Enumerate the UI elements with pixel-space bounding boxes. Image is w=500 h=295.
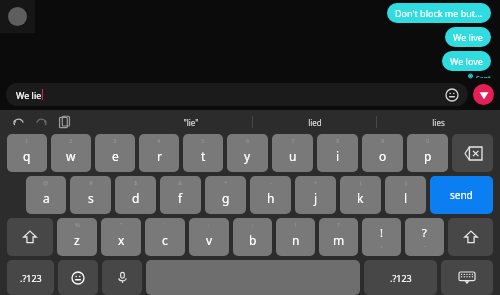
staticText: m bbox=[333, 232, 345, 248]
staticText: ! bbox=[380, 225, 383, 240]
staticText: .?123 bbox=[20, 272, 42, 284]
button[interactable]: 7 bbox=[272, 134, 313, 172]
button[interactable]: ! bbox=[362, 218, 401, 256]
button[interactable]: Voice input bbox=[102, 260, 142, 295]
staticText: ! bbox=[295, 221, 297, 229]
staticText: f bbox=[178, 190, 183, 206]
button[interactable]: ? bbox=[319, 218, 358, 256]
button[interactable]: Space bbox=[146, 260, 360, 295]
staticText: r bbox=[157, 148, 162, 164]
staticText: " bbox=[120, 221, 123, 229]
staticText: * bbox=[224, 179, 228, 187]
button[interactable]: Shift bbox=[448, 218, 493, 256]
button[interactable]: Undo bbox=[10, 114, 26, 130]
staticText: lied bbox=[308, 117, 322, 128]
button[interactable]: Don't block me but… bbox=[387, 3, 491, 23]
staticText: We love bbox=[450, 55, 483, 67]
staticText: Don't block me but… bbox=[395, 7, 483, 19]
button[interactable]: 2 bbox=[51, 134, 91, 172]
staticText: s bbox=[88, 190, 94, 206]
button[interactable]: 9 bbox=[362, 134, 403, 172]
button[interactable]: : bbox=[189, 218, 229, 256]
button[interactable]: @ bbox=[26, 176, 66, 214]
button[interactable]: .?123 bbox=[364, 260, 437, 295]
button[interactable]: Backspace bbox=[452, 134, 493, 172]
staticText: & bbox=[178, 179, 183, 187]
staticText: 2 bbox=[69, 137, 73, 145]
button[interactable]: Hide keyboard bbox=[441, 260, 493, 295]
button[interactable]: * bbox=[205, 176, 246, 214]
button[interactable]: + bbox=[295, 176, 336, 214]
button[interactable]: ? bbox=[405, 218, 444, 256]
staticText: z bbox=[74, 232, 80, 248]
staticText: send bbox=[450, 188, 473, 202]
button[interactable]: - bbox=[250, 176, 291, 214]
button[interactable]: Emoji bbox=[58, 260, 98, 295]
staticText: k bbox=[357, 190, 364, 206]
button[interactable]: 0 bbox=[407, 134, 448, 172]
button[interactable]: 8 bbox=[317, 134, 358, 172]
staticText: 8 bbox=[336, 137, 340, 145]
staticText: ) bbox=[405, 179, 407, 187]
button[interactable]: " bbox=[101, 218, 141, 256]
button[interactable]: 3 bbox=[95, 134, 135, 172]
staticText: g bbox=[222, 190, 230, 206]
button[interactable]: lied bbox=[253, 110, 376, 134]
button[interactable]: 4 bbox=[139, 134, 179, 172]
button[interactable]: ' bbox=[145, 218, 185, 256]
staticText: . bbox=[424, 240, 426, 250]
staticText: lies bbox=[432, 117, 445, 128]
button[interactable]: 6 bbox=[227, 134, 268, 172]
button[interactable]: lies bbox=[377, 110, 500, 134]
staticText: - bbox=[270, 179, 272, 187]
staticText: 0 bbox=[426, 137, 430, 145]
staticText: u bbox=[289, 148, 297, 164]
button[interactable]: .?123 bbox=[7, 260, 54, 295]
staticText: h bbox=[267, 190, 275, 206]
staticText: e bbox=[112, 148, 119, 164]
staticText: v bbox=[206, 232, 213, 248]
button[interactable]: ; bbox=[233, 218, 272, 256]
staticText: ; bbox=[252, 221, 254, 229]
button[interactable]: Redo bbox=[33, 114, 49, 130]
button[interactable]: % bbox=[57, 218, 97, 256]
staticText: 4 bbox=[157, 137, 161, 145]
button[interactable]: & bbox=[160, 176, 201, 214]
staticText: w bbox=[66, 148, 76, 164]
button[interactable]: $ bbox=[115, 176, 156, 214]
button[interactable]: Emoji bbox=[445, 88, 458, 101]
staticText: t bbox=[201, 148, 206, 164]
staticText: 9 bbox=[381, 137, 385, 145]
staticText: : bbox=[208, 221, 210, 229]
button[interactable]: # bbox=[70, 176, 111, 214]
button[interactable]: ! bbox=[276, 218, 315, 256]
staticText: .?123 bbox=[390, 272, 412, 284]
button[interactable]: We love bbox=[442, 51, 491, 71]
staticText: ? bbox=[422, 225, 427, 240]
staticText: a bbox=[43, 190, 50, 206]
staticText: Sent bbox=[476, 74, 491, 78]
button[interactable]: ) bbox=[385, 176, 426, 214]
button[interactable]: "lie" bbox=[130, 110, 252, 134]
staticText: We live bbox=[453, 31, 483, 43]
staticText: 1 bbox=[25, 137, 29, 145]
button[interactable]: Clipboard bbox=[56, 114, 72, 130]
staticText: j bbox=[314, 190, 318, 206]
staticText: + bbox=[314, 179, 318, 187]
button[interactable]: Shift bbox=[7, 218, 53, 256]
button[interactable]: send bbox=[430, 176, 493, 214]
staticText: 3 bbox=[113, 137, 117, 145]
button[interactable]: 5 bbox=[183, 134, 223, 172]
button[interactable]: ( bbox=[340, 176, 381, 214]
staticText: y bbox=[244, 148, 251, 164]
staticText: % bbox=[75, 221, 80, 229]
staticText: , bbox=[381, 240, 383, 250]
staticText: q bbox=[23, 148, 31, 164]
button[interactable]: 1 bbox=[7, 134, 47, 172]
button[interactable]: We lie bbox=[6, 83, 468, 106]
staticText: x bbox=[118, 232, 125, 248]
staticText: i bbox=[336, 148, 340, 164]
staticText: n bbox=[292, 232, 300, 248]
button[interactable]: Send message bbox=[473, 84, 494, 105]
button[interactable]: We live bbox=[445, 27, 491, 47]
